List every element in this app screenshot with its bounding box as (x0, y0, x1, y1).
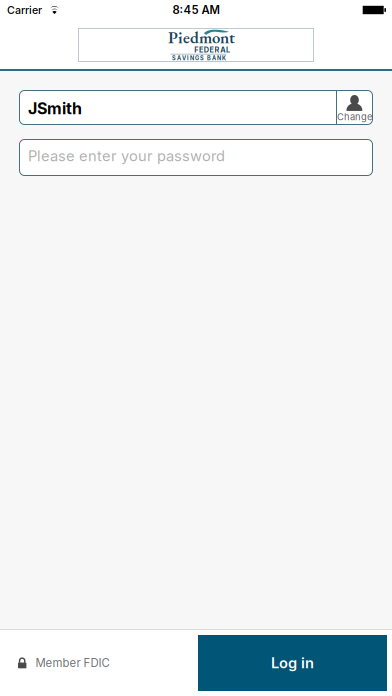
staticText: Member FDIC (35, 656, 109, 670)
staticText: Change (337, 111, 372, 122)
button[interactable]: Member FDIC (0, 630, 198, 696)
staticText: Please enter your password (28, 147, 225, 165)
staticText: FEDERAL (194, 45, 230, 54)
staticText: Log in (271, 654, 314, 672)
button[interactable]: Change (336, 91, 373, 124)
staticText: JSmith (28, 99, 82, 118)
staticText: 8:45 AM (172, 3, 219, 17)
staticText: Carrier (7, 3, 42, 16)
staticText: SAVINGS BANK (172, 55, 226, 61)
button[interactable]: Log in (198, 630, 392, 696)
staticText: Piedmont (168, 26, 235, 48)
